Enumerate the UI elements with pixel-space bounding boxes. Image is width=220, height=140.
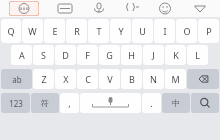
button[interactable]: Z [33, 69, 54, 89]
staticText: S [41, 49, 46, 61]
staticText: , [68, 97, 71, 109]
button[interactable]: C [77, 69, 98, 89]
staticText: 中 [172, 98, 180, 108]
staticText: W [28, 25, 37, 37]
button[interactable]: 中 [162, 93, 190, 113]
staticText: P [206, 25, 212, 37]
button[interactable]: Q [1, 19, 21, 43]
staticText: T [96, 25, 102, 37]
button[interactable]: S [33, 45, 54, 65]
button[interactable]: H [121, 45, 142, 65]
staticText: . [150, 97, 153, 109]
button[interactable]: . [142, 93, 161, 113]
staticText: A [19, 49, 25, 61]
staticText: G [106, 49, 113, 61]
button[interactable]: T [88, 19, 109, 43]
button[interactable]: J [143, 45, 164, 65]
button[interactable]: I [154, 19, 175, 43]
button[interactable]: Text editing [57, 1, 73, 16]
button[interactable]: B [121, 69, 142, 89]
button[interactable]: Hide keyboard [192, 1, 208, 16]
button[interactable]: Y [110, 19, 131, 43]
staticText: B [129, 73, 135, 85]
staticText: X [63, 73, 69, 85]
staticText: E [52, 25, 58, 37]
button[interactable]: W [22, 19, 43, 43]
staticText: D [62, 49, 69, 61]
button[interactable]: Space [80, 93, 141, 113]
staticText: H [128, 49, 135, 61]
staticText: J [152, 49, 155, 61]
button[interactable]: K [165, 45, 186, 65]
button[interactable]: V [99, 69, 120, 89]
button[interactable]: U [132, 19, 153, 43]
button[interactable]: N [143, 69, 164, 89]
button[interactable]: ab [1, 69, 32, 89]
button[interactable]: Backspace [187, 69, 219, 89]
staticText: L [195, 49, 200, 61]
staticText: R [74, 25, 80, 37]
staticText: I [163, 25, 167, 37]
button[interactable]: Voice input [91, 1, 107, 16]
staticText: F [85, 49, 90, 61]
button[interactable]: M [165, 69, 186, 89]
button[interactable]: E [44, 19, 65, 43]
staticText: M [171, 73, 180, 85]
staticText: C [85, 73, 91, 85]
button[interactable]: Emoji [157, 1, 173, 16]
button[interactable]: Clipboard [124, 1, 140, 16]
button[interactable]: P [198, 19, 219, 43]
staticText: ab [12, 74, 22, 85]
staticText: Q [7, 25, 15, 37]
button[interactable]: A [11, 45, 32, 65]
button[interactable]: L [187, 45, 208, 65]
staticText: U [139, 25, 146, 37]
staticText: V [107, 73, 113, 85]
button[interactable]: R [66, 19, 87, 43]
button[interactable]: 符 [31, 93, 59, 113]
button[interactable]: 123 [1, 93, 30, 113]
button[interactable]: Search [191, 93, 219, 113]
button[interactable]: , [60, 93, 79, 113]
staticText: 符 [41, 98, 49, 108]
staticText: O [183, 25, 191, 37]
staticText: Z [41, 73, 47, 85]
button[interactable]: D [55, 45, 76, 65]
staticText: N [150, 73, 157, 85]
button[interactable]: X [55, 69, 76, 89]
staticText: 123 [9, 98, 23, 109]
button[interactable]: F [77, 45, 98, 65]
button[interactable]: O [176, 19, 197, 43]
staticText: K [173, 49, 179, 61]
staticText: Y [118, 25, 124, 37]
button[interactable]: Input method [9, 1, 39, 16]
button[interactable]: G [99, 45, 120, 65]
